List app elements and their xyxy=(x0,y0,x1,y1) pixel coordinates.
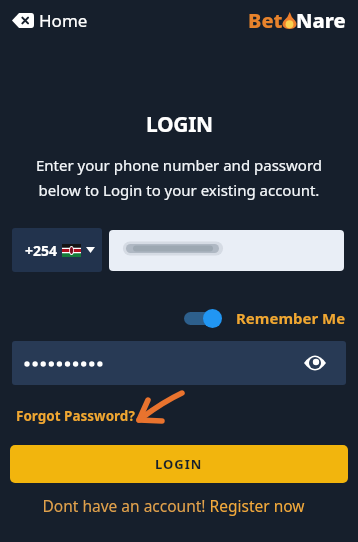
button[interactable] xyxy=(109,230,344,271)
button[interactable]: LOGIN xyxy=(10,445,348,483)
button[interactable] xyxy=(184,308,222,328)
button[interactable]: +254 xyxy=(12,228,102,272)
staticText: Home xyxy=(39,9,88,32)
staticText: Nare xyxy=(296,7,346,34)
staticText: Enter your phone number and password bel… xyxy=(0,155,358,200)
button[interactable]: Forgot Password? xyxy=(16,407,135,425)
button[interactable] xyxy=(12,341,346,385)
button[interactable]: Home xyxy=(12,9,88,32)
staticText: LOGIN xyxy=(146,110,213,139)
button[interactable]: Dont have an account! Register now xyxy=(0,495,347,516)
staticText: LOGIN xyxy=(155,455,203,473)
staticText: +254 xyxy=(25,241,58,260)
staticText: Bet xyxy=(248,7,283,34)
staticText: Remember Me xyxy=(236,308,346,328)
